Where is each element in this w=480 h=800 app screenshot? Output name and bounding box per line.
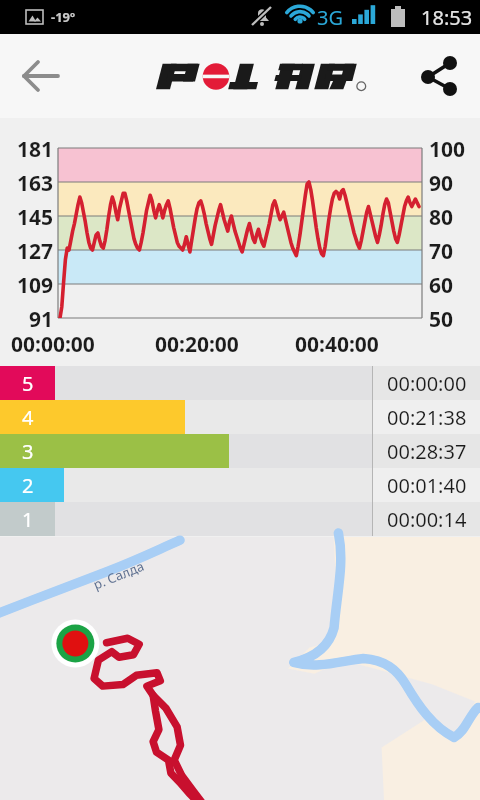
staticText: 2: [22, 472, 34, 499]
button[interactable]: 5: [0, 366, 480, 400]
staticText: 00:40:00: [295, 330, 379, 359]
staticText: 4: [22, 404, 34, 431]
staticText: 90: [429, 169, 454, 198]
button[interactable]: 2: [0, 468, 480, 502]
staticText: 3: [22, 438, 34, 465]
staticText: 91: [28, 305, 53, 334]
staticText: 00:21:38: [387, 404, 467, 431]
staticText: 109: [16, 271, 53, 300]
staticText: 100: [429, 135, 466, 164]
staticText: 60: [429, 271, 454, 300]
staticText: 00:20:00: [155, 330, 239, 359]
staticText: 1: [22, 506, 34, 533]
staticText: 80: [429, 203, 454, 232]
button[interactable]: Route map: [0, 537, 480, 800]
button[interactable]: 4: [0, 400, 480, 434]
button[interactable]: Share: [410, 47, 468, 105]
staticText: 00:00:00: [387, 370, 467, 397]
staticText: 18:53: [421, 4, 473, 31]
staticText: 181: [16, 135, 53, 164]
staticText: 145: [16, 203, 53, 232]
staticText: -19º: [51, 8, 76, 26]
staticText: 00:28:37: [387, 438, 467, 465]
button[interactable]: 1: [0, 502, 480, 536]
staticText: 3G: [317, 4, 343, 31]
staticText: 00:00:00: [11, 330, 95, 359]
button[interactable]: 3: [0, 434, 480, 468]
staticText: 70: [429, 237, 454, 266]
staticText: 00:01:40: [387, 472, 467, 499]
button[interactable]: Back: [12, 47, 70, 105]
staticText: 50: [429, 305, 454, 334]
staticText: 00:00:14: [387, 506, 467, 533]
staticText: 5: [22, 370, 34, 397]
staticText: 163: [16, 169, 53, 198]
staticText: 127: [16, 237, 53, 266]
staticText: р. Салда: [91, 556, 147, 593]
